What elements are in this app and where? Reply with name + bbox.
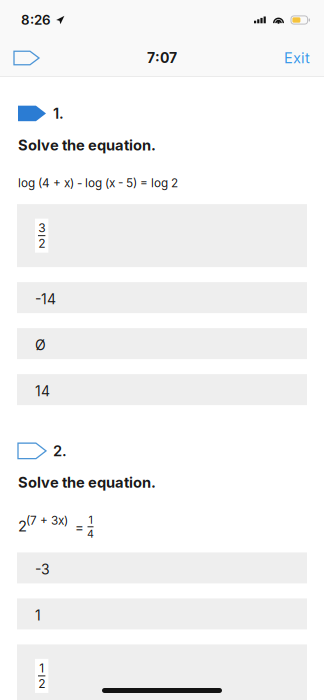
button[interactable]: Exit [276, 39, 324, 77]
staticText: Exit [284, 49, 310, 67]
button[interactable]: 14 [17, 374, 307, 405]
staticText: 1 [39, 661, 44, 675]
staticText: Ø [35, 337, 46, 354]
staticText: 2 [38, 676, 45, 691]
button[interactable]: 3 [17, 204, 307, 267]
button[interactable]: -3 [17, 552, 307, 583]
button[interactable]: Ø [17, 328, 307, 359]
button[interactable]: Flag question [0, 440, 53, 462]
staticText: 7:07 [147, 49, 177, 66]
staticText: 2 [38, 236, 45, 251]
button[interactable]: 1 [17, 644, 307, 700]
staticText: 1 [88, 513, 92, 526]
staticText: Solve the equation. [18, 136, 156, 154]
staticText: 1 [35, 607, 41, 624]
staticText: -14 [35, 291, 56, 308]
staticText: 2 [18, 517, 27, 535]
button[interactable]: Unflag question [0, 103, 53, 124]
button[interactable]: -14 [17, 282, 307, 313]
staticText: 3 [38, 221, 45, 235]
staticText: 2. [53, 442, 67, 460]
staticText: 1. [53, 105, 64, 122]
staticText: -3 [35, 561, 50, 578]
staticText: log (4 + x) - log (x - 5) = log 2 [18, 176, 178, 190]
button[interactable]: 1 [17, 598, 307, 629]
staticText: (7 + 3x) [26, 513, 68, 528]
button[interactable]: Flag question [0, 41, 47, 75]
staticText: 8:26 [21, 12, 51, 28]
staticText: Solve the equation. [18, 474, 156, 491]
staticText: = [75, 519, 84, 535]
staticText: 4 [87, 527, 94, 540]
staticText: 14 [35, 383, 50, 400]
